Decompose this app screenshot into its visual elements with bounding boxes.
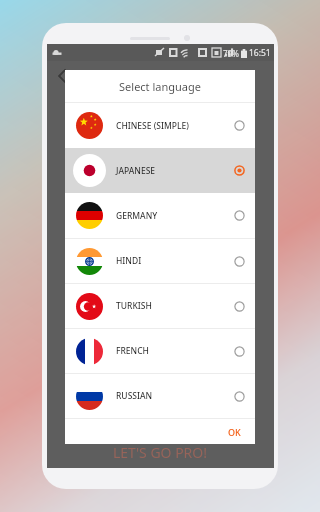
staticText: GERMANY <box>116 210 234 222</box>
staticText: CHINESE (SIMPLE) <box>116 120 234 132</box>
staticText: HINDI <box>116 255 234 267</box>
button[interactable]: HINDI <box>65 239 255 283</box>
staticText: OK <box>228 426 241 438</box>
button[interactable]: JAPANESE <box>65 148 255 193</box>
staticText: RUSSIAN <box>116 390 234 402</box>
staticText: FRENCH <box>116 345 234 357</box>
button[interactable]: FRENCH <box>65 329 255 373</box>
button[interactable]: RUSSIAN <box>65 374 255 418</box>
button[interactable]: GERMANY <box>65 193 255 238</box>
staticText: LET'S GO PRO! <box>113 443 208 462</box>
staticText: TURKISH <box>116 300 234 312</box>
button[interactable]: CHINESE (SIMPLE) <box>65 103 255 148</box>
button[interactable]: TURKISH <box>65 284 255 328</box>
staticText: Select language <box>119 79 201 94</box>
staticText: 16:51 <box>249 47 271 59</box>
button[interactable]: Back <box>52 65 74 87</box>
staticText: 79% <box>223 48 239 59</box>
button[interactable]: OK <box>222 421 247 443</box>
staticText: JAPANESE <box>116 165 234 177</box>
